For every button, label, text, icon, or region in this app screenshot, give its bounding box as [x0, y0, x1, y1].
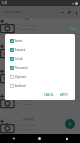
staticText: 1:41	[2, 1, 8, 5]
button[interactable]: 1988	[0, 16, 80, 41]
staticText: Fujicolor C200	[20, 123, 36, 126]
staticText: Processed	[15, 66, 28, 70]
staticText: mystery	[23, 117, 34, 121]
staticText: CANCEL	[44, 93, 54, 97]
button[interactable]: daylight	[0, 91, 80, 116]
button[interactable]: Filter	[59, 9, 66, 16]
staticText: Exposed	[15, 48, 26, 52]
staticText: lomo	[23, 67, 30, 71]
button[interactable]: In Lab	[5, 54, 75, 63]
button[interactable]: Recents	[53, 134, 80, 143]
button[interactable]: Digitised	[5, 72, 75, 81]
staticText: APPLY	[60, 93, 68, 97]
button[interactable]: Back	[0, 134, 26, 143]
button[interactable]: CANCEL	[42, 91, 56, 99]
staticText: 36 exposures	[20, 102, 35, 105]
staticText: 24 exposures	[20, 127, 35, 130]
staticText: Agfa Vista 400	[20, 48, 36, 51]
button[interactable]: Active	[5, 36, 75, 45]
button[interactable]: Exposed	[5, 45, 75, 54]
button[interactable]: Processed	[5, 63, 75, 72]
staticText: 36 exposures	[20, 77, 35, 80]
button[interactable]: mystery	[0, 116, 80, 141]
button[interactable]: Add film roll	[65, 119, 75, 129]
button[interactable]: Archived	[5, 81, 75, 90]
button[interactable]: Sort	[66, 9, 73, 16]
button[interactable]: lomo	[0, 66, 80, 91]
staticText: 1988	[23, 17, 30, 21]
button[interactable]: Home	[26, 134, 53, 143]
staticText: 36 exposures	[20, 27, 35, 30]
staticText: Your Library	[4, 10, 22, 14]
button[interactable]: APPLY	[58, 91, 70, 99]
staticText: In Lab	[15, 57, 23, 61]
staticText: Archived	[15, 84, 26, 88]
staticText: Kodak Gold 200	[20, 23, 38, 26]
staticText: Ilford HP5 400	[20, 73, 37, 76]
staticText: Digitised	[15, 75, 26, 79]
button[interactable]: expired	[0, 41, 80, 66]
staticText: Portra 400	[20, 98, 32, 101]
button[interactable]: More options	[73, 10, 79, 16]
staticText: Active	[15, 39, 23, 43]
button[interactable]: Active	[70, 27, 78, 31]
